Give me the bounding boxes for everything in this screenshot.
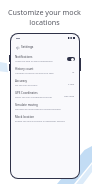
staticText: Customize your mock locations — [3, 7, 86, 27]
button[interactable]: History count — [11, 65, 79, 77]
staticText: History count — [15, 67, 34, 71]
button[interactable]: Mock location — [11, 113, 79, 125]
staticText: Number of history records you save — [15, 72, 54, 75]
button[interactable]: Simulate moving — [11, 101, 79, 113]
staticText: Mock location — [15, 115, 34, 119]
button[interactable]: Notifications — [11, 53, 79, 65]
button[interactable]: GPS Coordinates — [11, 89, 79, 101]
staticText: 2 min — [68, 82, 75, 85]
staticText: Simulate moving — [15, 103, 38, 107]
staticText: Accuracy — [15, 79, 28, 83]
staticText: Notifications — [15, 55, 33, 59]
button[interactable]: Back — [15, 45, 20, 50]
staticText: Geo loge — [64, 94, 75, 97]
button[interactable]: Accuracy — [11, 77, 79, 89]
staticText: Settings — [21, 45, 34, 49]
staticText: GPS Coordinates — [15, 91, 38, 95]
staticText: m — [72, 70, 75, 73]
staticText: Allow this app to send notifications — [15, 60, 53, 63]
staticText: Enable the mock location in developer op… — [15, 120, 65, 123]
staticText: Simulate an automatically moving positio… — [15, 108, 61, 111]
button[interactable]: Toggle notifications — [67, 57, 75, 61]
staticText: Select the GPS coordinates format — [15, 96, 52, 99]
staticText: Set the GPS accuracy — [15, 84, 38, 87]
